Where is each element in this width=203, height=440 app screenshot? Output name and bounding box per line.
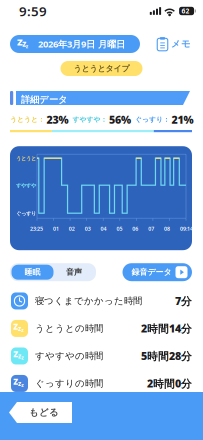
- button[interactable]: Z: [0, 315, 203, 342]
- button[interactable]: Z: [10, 35, 140, 53]
- staticText: Z: [21, 328, 23, 333]
- staticText: すやすや: [16, 182, 36, 189]
- staticText: Z: [21, 383, 23, 388]
- staticText: ぐっすりの時間: [35, 378, 103, 389]
- staticText: Z: [18, 380, 21, 387]
- staticText: Z: [21, 355, 23, 361]
- button[interactable]: メモ: [157, 35, 191, 53]
- staticText: 5時間28分: [141, 349, 192, 363]
- staticText: うとうとの時間: [35, 323, 103, 334]
- staticText: 04: [101, 225, 107, 232]
- staticText: 録音データ: [131, 267, 171, 277]
- staticText: 08: [164, 225, 170, 232]
- staticText: 詳細データ: [21, 94, 68, 105]
- staticText: メモ: [171, 38, 191, 50]
- button[interactable]: 録音データ: [122, 263, 192, 281]
- staticText: 7分: [175, 294, 192, 308]
- staticText: Z: [17, 36, 23, 48]
- staticText: うとうとタイプ: [73, 64, 129, 73]
- button[interactable]: 睡眠: [11, 265, 53, 280]
- staticText: すやすや：: [72, 115, 107, 124]
- button[interactable]: うとうとタイプ: [60, 61, 142, 76]
- staticText: Z: [26, 44, 28, 49]
- staticText: Z: [13, 376, 18, 387]
- staticText: 23%: [46, 112, 68, 127]
- staticText: 06: [132, 225, 138, 232]
- button[interactable]: もどる: [9, 402, 72, 423]
- staticText: すやすやの時間: [35, 350, 103, 362]
- staticText: 56%: [109, 112, 131, 127]
- staticText: 02: [69, 225, 75, 232]
- staticText: うとうと：: [10, 115, 45, 124]
- staticText: 睡眠: [24, 267, 40, 277]
- staticText: 03: [85, 225, 91, 232]
- button[interactable]: Z: [0, 370, 203, 397]
- staticText: Z: [18, 353, 21, 360]
- staticText: Z: [22, 40, 26, 49]
- staticText: 音声: [66, 267, 82, 277]
- staticText: 2026年3月9日 月曜日: [38, 38, 125, 50]
- staticText: 寝つくまでかかった時間: [35, 295, 142, 307]
- button[interactable]: 音声: [53, 265, 94, 280]
- staticText: 62: [181, 6, 189, 15]
- staticText: 21%: [171, 112, 193, 127]
- staticText: 01: [53, 225, 59, 232]
- staticText: 05: [116, 225, 122, 232]
- staticText: Z: [13, 349, 18, 359]
- staticText: うとうと: [16, 155, 36, 162]
- staticText: もどる: [29, 407, 59, 418]
- staticText: ぐっすり: [16, 210, 36, 217]
- staticText: Z: [18, 325, 21, 332]
- staticText: 9:59: [19, 2, 47, 20]
- staticText: 09:14: [180, 225, 193, 232]
- staticText: 2時間0分: [147, 376, 192, 391]
- staticText: 2時間14分: [141, 321, 192, 336]
- button[interactable]: Z: [0, 342, 203, 370]
- staticText: Z: [13, 321, 18, 332]
- staticText: ぐっすり：: [135, 115, 170, 124]
- staticText: 23:25: [30, 225, 43, 232]
- staticText: 07: [148, 225, 154, 232]
- button[interactable]: 寝つくまでかかった時間: [0, 287, 203, 315]
